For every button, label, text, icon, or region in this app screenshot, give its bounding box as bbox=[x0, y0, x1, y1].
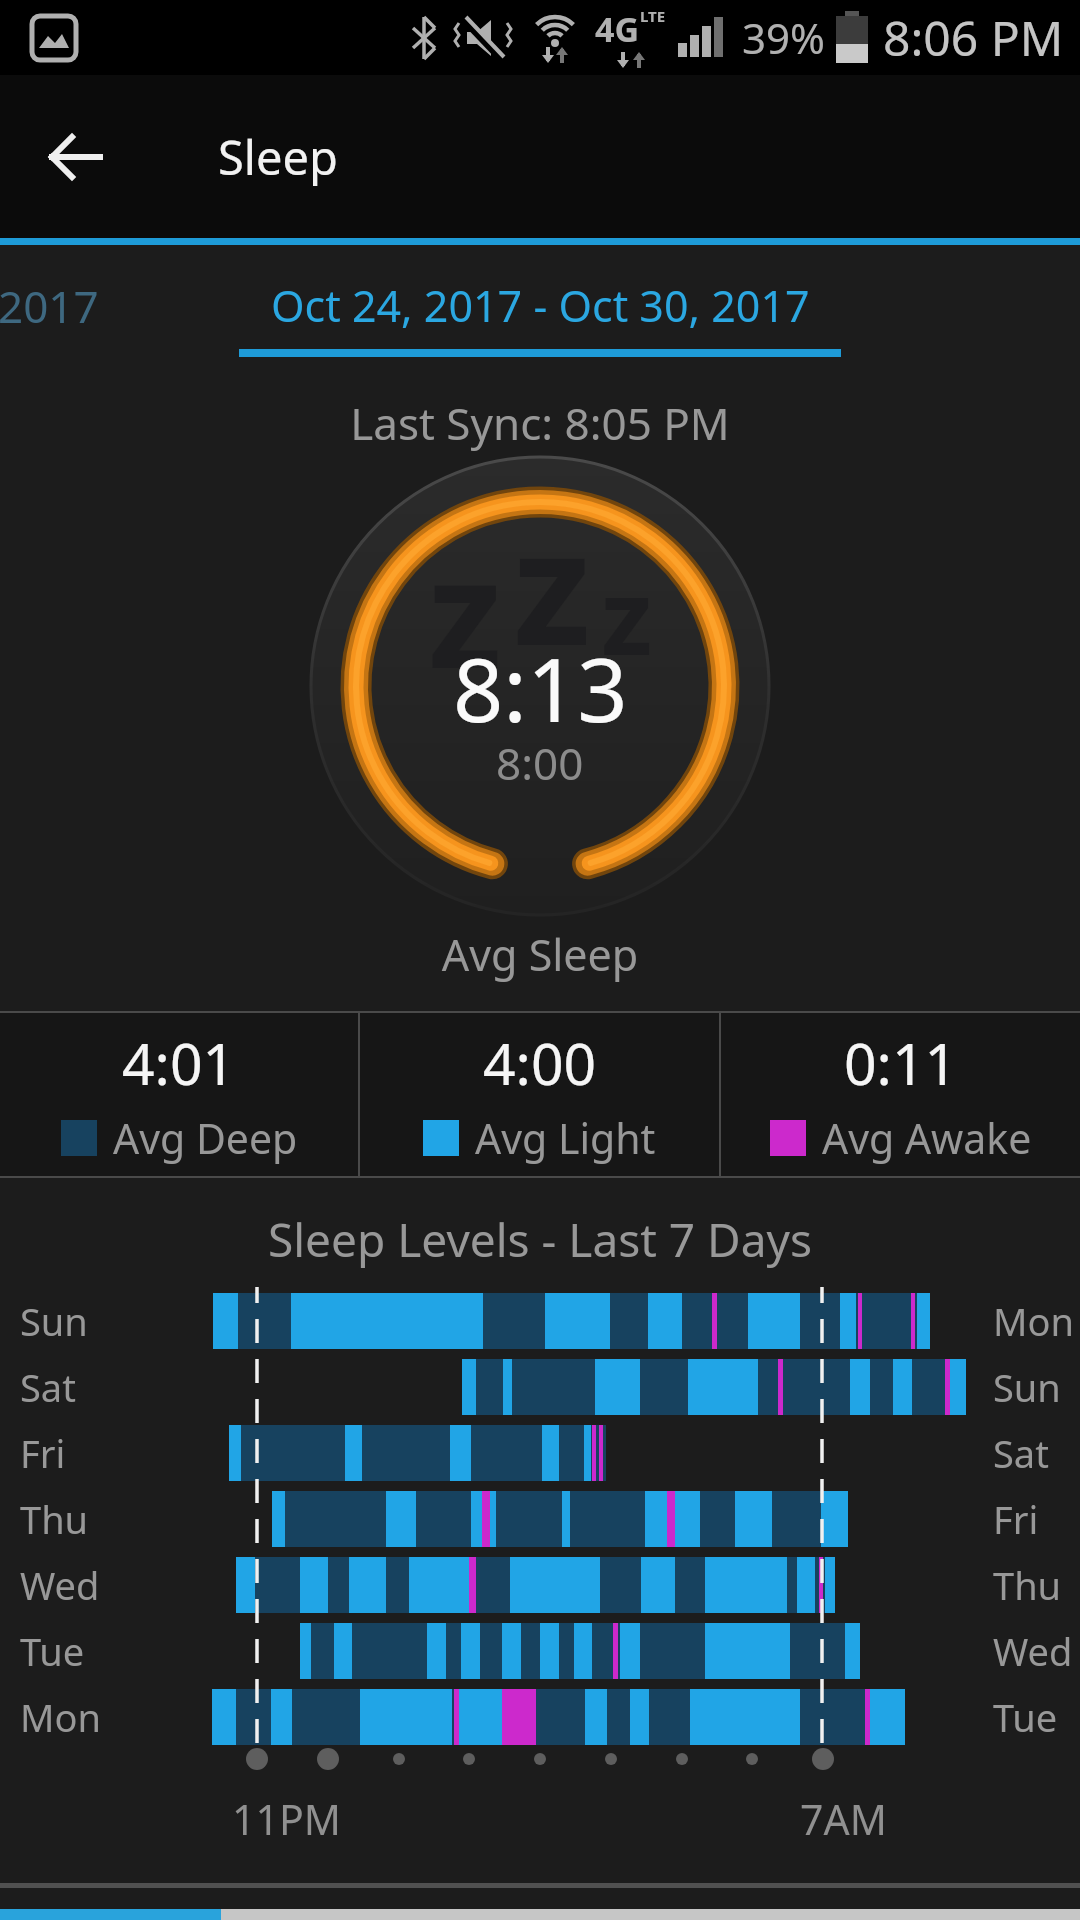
staticText: Thu bbox=[20, 1493, 89, 1545]
button[interactable]: Oct 24, 2017 - Oct 30, 2017 bbox=[239, 276, 841, 357]
staticText: Fri bbox=[20, 1427, 66, 1479]
staticText: Avg Awake bbox=[822, 1110, 1032, 1166]
staticText: 4:00 bbox=[483, 1024, 597, 1102]
staticText: 7AM bbox=[800, 1791, 887, 1847]
button[interactable]: 4:00 bbox=[360, 1013, 719, 1176]
staticText: Wed bbox=[20, 1559, 100, 1611]
staticText: 8:00 bbox=[496, 733, 584, 793]
staticText: 4:01 bbox=[122, 1024, 236, 1102]
staticText: Oct 24, 2017 - Oct 30, 2017 bbox=[271, 276, 810, 335]
staticText: z bbox=[601, 544, 653, 686]
staticText: Sleep bbox=[218, 125, 338, 189]
staticText: Sat bbox=[993, 1427, 1049, 1479]
staticText: Mon bbox=[20, 1691, 101, 1743]
staticText: Last Sync: 8:05 PM bbox=[0, 393, 1080, 453]
staticText: Tue bbox=[20, 1625, 85, 1677]
staticText: Sleep Levels - Last 7 Days bbox=[0, 1208, 1080, 1271]
staticText: 11PM bbox=[232, 1791, 341, 1847]
staticText: Mon bbox=[993, 1295, 1074, 1347]
staticText: Wed bbox=[993, 1625, 1073, 1677]
staticText: Thu bbox=[993, 1559, 1062, 1611]
staticText: Avg Deep bbox=[113, 1110, 298, 1166]
staticText: Fri bbox=[993, 1493, 1039, 1545]
staticText: z bbox=[428, 508, 502, 712]
staticText: 2017 bbox=[0, 276, 99, 336]
staticText: 39% bbox=[742, 9, 825, 66]
staticText: Sun bbox=[993, 1361, 1061, 1413]
staticText: Avg Light bbox=[475, 1110, 656, 1166]
button[interactable] bbox=[40, 121, 112, 193]
button[interactable]: 0:11 bbox=[721, 1013, 1080, 1176]
staticText: 0:11 bbox=[844, 1024, 958, 1102]
staticText: 8:13 bbox=[453, 628, 628, 748]
staticText: Sun bbox=[20, 1295, 88, 1347]
staticText: LTE bbox=[640, 6, 666, 26]
staticText: z bbox=[513, 476, 591, 691]
staticText: Sat bbox=[20, 1361, 76, 1413]
staticText: 4G bbox=[595, 6, 640, 52]
button[interactable]: 4:01 bbox=[0, 1013, 358, 1176]
staticText: Tue bbox=[993, 1691, 1058, 1743]
staticText: 8:06 PM bbox=[883, 5, 1064, 70]
staticText: Avg Sleep bbox=[0, 925, 1080, 984]
